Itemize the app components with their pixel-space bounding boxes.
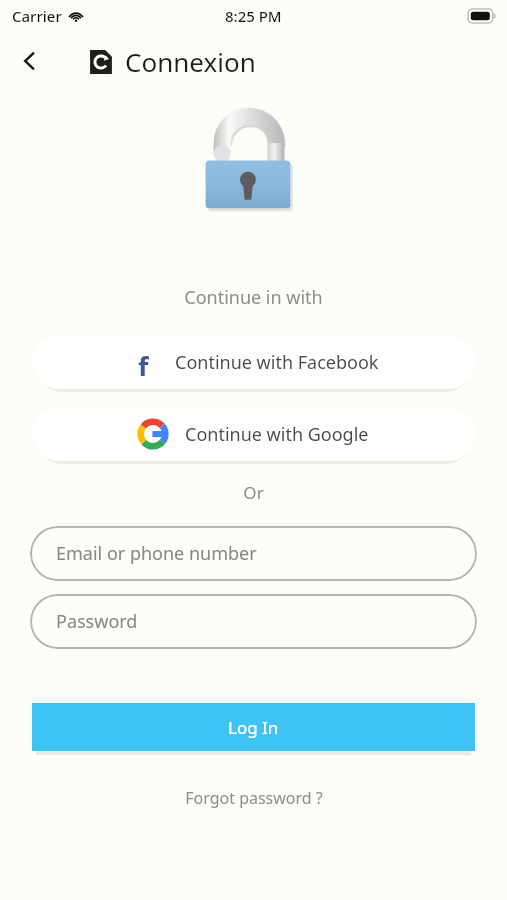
staticText: Continue with Facebook — [175, 350, 379, 375]
staticText: Log In — [228, 716, 279, 739]
button[interactable]: Back — [8, 39, 52, 83]
staticText: Carrier — [12, 6, 62, 26]
staticText: Continue with Google — [185, 422, 369, 447]
button[interactable]: Continue with Google — [32, 407, 475, 461]
staticText: Password — [56, 609, 138, 634]
staticText: 8:25 PM — [225, 6, 282, 26]
staticText: Or — [0, 481, 507, 504]
button[interactable]: Log In — [32, 703, 475, 751]
button[interactable]: Password — [30, 594, 477, 649]
button[interactable]: f — [32, 335, 475, 389]
staticText: Forgot password ? — [185, 787, 323, 809]
staticText: f — [138, 348, 149, 376]
button[interactable]: Forgot password ? — [0, 787, 507, 809]
staticText: Connexion — [125, 44, 256, 79]
button[interactable]: Email or phone number — [30, 526, 477, 581]
staticText: Continue in with — [0, 285, 507, 310]
staticText: Email or phone number — [56, 541, 257, 566]
